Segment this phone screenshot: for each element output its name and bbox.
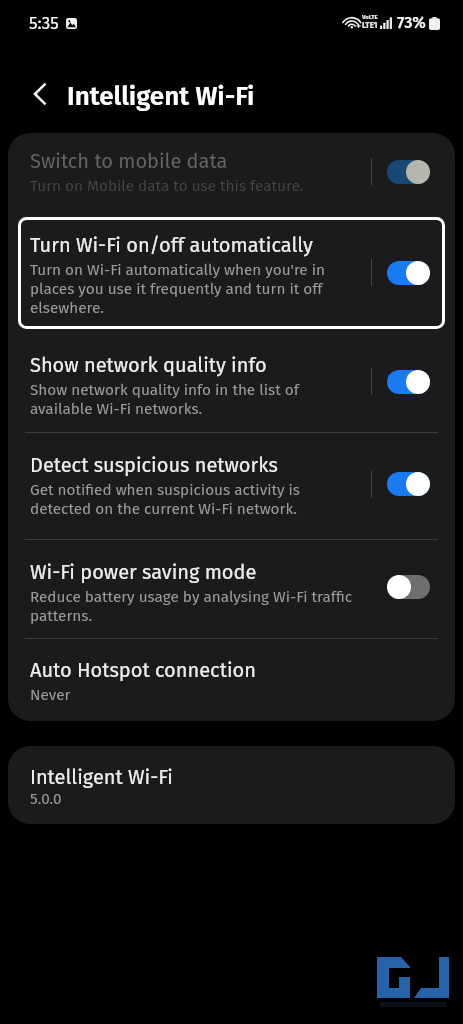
button[interactable]: Turn Wi-Fi on/off automatically (8, 214, 455, 335)
staticText: Auto Hotspot connection (30, 658, 256, 683)
button[interactable]: Toggle (384, 572, 432, 606)
staticText: Reduce battery usage by analysing Wi-Fi … (30, 587, 367, 625)
button[interactable]: Toggle (384, 367, 432, 401)
button[interactable]: Toggle (384, 258, 432, 292)
staticText: VoLTE (362, 14, 378, 21)
staticText: Detect suspicious networks (30, 453, 278, 478)
button[interactable]: Toggle (384, 469, 432, 503)
button[interactable]: Toggle (384, 157, 432, 191)
button[interactable]: Intelligent Wi-Fi (8, 746, 455, 824)
button[interactable]: Navigate up (18, 72, 62, 116)
staticText: Show network quality info in the list of… (30, 380, 320, 418)
staticText: Intelligent Wi-Fi (67, 80, 255, 112)
button[interactable]: Detect suspicious networks (8, 433, 455, 539)
staticText: Turn on Wi-Fi automatically when you're … (30, 260, 330, 317)
button[interactable]: Wi-Fi power saving mode (8, 540, 455, 638)
staticText: Show network quality info (30, 353, 267, 378)
button[interactable]: Show network quality info (8, 335, 455, 432)
staticText: Wi-Fi power saving mode (30, 560, 257, 585)
staticText: Turn Wi-Fi on/off automatically (30, 233, 313, 258)
staticText: Get notified when suspicious activity is… (30, 480, 325, 518)
staticText: 5.0.0 (30, 789, 62, 808)
staticText: 5:35 (29, 13, 59, 33)
button[interactable]: Auto Hotspot connection (8, 639, 455, 721)
staticText: Never (30, 685, 71, 704)
staticText: Switch to mobile data (30, 149, 228, 174)
staticText: 73% (397, 14, 426, 32)
staticText: Turn on Mobile data to use this feature. (30, 176, 304, 195)
staticText: Intelligent Wi-Fi (30, 765, 173, 789)
staticText: LTE1 (362, 21, 378, 30)
button[interactable]: Switch to mobile data (8, 133, 455, 214)
